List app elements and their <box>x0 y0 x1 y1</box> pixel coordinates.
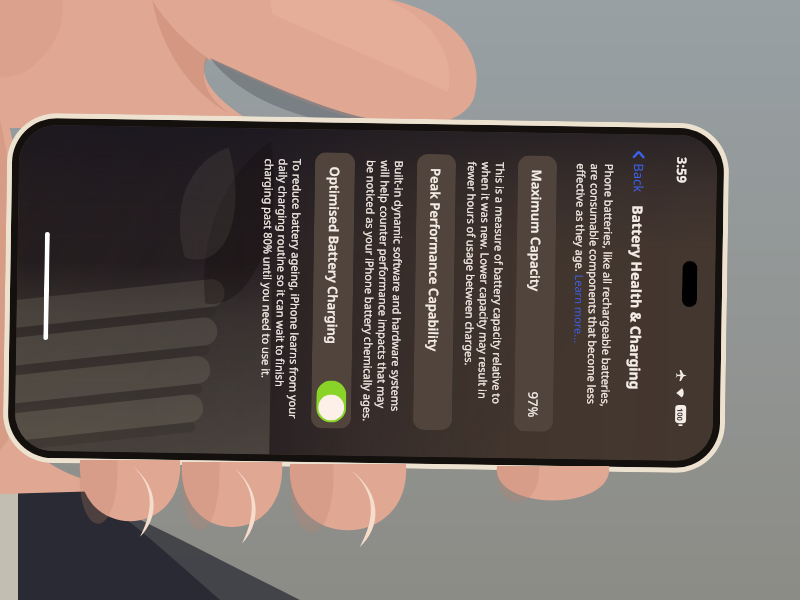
staticText: Peak Performance Capability <box>424 168 445 352</box>
staticText: Phone batteries, like all rechargeable b… <box>570 163 617 426</box>
other: Battery 100 percent <box>675 405 686 426</box>
other: Wi-Fi <box>675 388 686 398</box>
other: Aeroplane mode <box>676 370 687 381</box>
button[interactable]: Optimised Battery Charging <box>311 152 355 429</box>
staticText: Optimised Battery Charging <box>323 166 344 345</box>
staticText: 3:59 <box>673 157 691 183</box>
button[interactable]: Optimised Battery Charging, on <box>316 380 347 423</box>
staticText: To reduce battery ageing, iPhone learns … <box>258 158 305 421</box>
staticText: Built-in dynamic software and hardware s… <box>360 160 407 423</box>
staticText: 100 <box>675 408 685 421</box>
button[interactable]: Back <box>623 134 654 200</box>
staticText: This is a measure of battery capacity re… <box>461 161 508 424</box>
button[interactable]: Maximum Capacity <box>514 155 557 432</box>
staticText: 97% <box>524 391 542 418</box>
staticText: Maximum Capacity <box>526 169 546 292</box>
button[interactable]: Peak Performance Capability <box>413 154 456 430</box>
staticText: Battery Health & Charging <box>625 205 647 390</box>
staticText: Back <box>630 163 648 192</box>
